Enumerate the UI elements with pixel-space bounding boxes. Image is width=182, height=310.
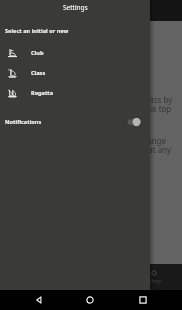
- staticText: Rotate the compass by: [87, 94, 173, 105]
- button[interactable]: Back: [32, 290, 46, 310]
- staticText: Select an initial or new: [5, 27, 69, 35]
- button[interactable]: Regatta: [0, 83, 150, 103]
- button[interactable]: Class: [0, 63, 150, 83]
- staticText: Settings: [145, 278, 163, 284]
- staticText: the units at any: [113, 144, 172, 155]
- staticText: tapping the top: [113, 103, 172, 114]
- button[interactable]: Club: [0, 43, 150, 63]
- staticText: You can change: [107, 135, 166, 146]
- button[interactable]: Recent apps: [136, 290, 150, 310]
- staticText: Notifications: [5, 118, 42, 126]
- button[interactable]: Notifications: [0, 112, 150, 132]
- staticText: Settings: [63, 3, 88, 12]
- button[interactable]: Notifications toggle: [126, 116, 144, 128]
- staticText: Regatta: [31, 89, 54, 97]
- staticText: Class: [31, 69, 46, 77]
- button[interactable]: Home: [83, 290, 97, 310]
- button[interactable]: Settings: [143, 264, 165, 290]
- staticText: Club: [31, 49, 44, 57]
